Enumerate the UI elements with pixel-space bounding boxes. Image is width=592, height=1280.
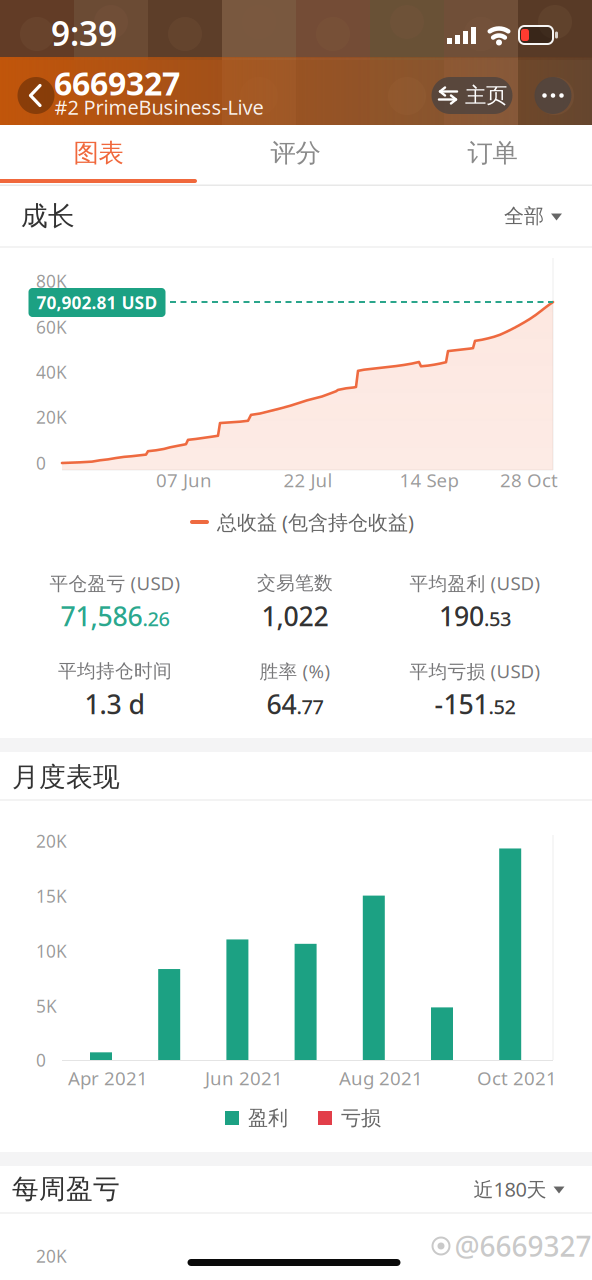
staticText: 1,022: [261, 598, 328, 634]
staticText: @6669327: [454, 1227, 591, 1265]
staticText: 15K: [36, 884, 67, 907]
staticText: 总收益 (包含持仓收益): [217, 509, 414, 535]
staticText: 0: [36, 1048, 46, 1071]
staticText: 22 Jul: [283, 468, 332, 492]
staticText: .53: [484, 605, 511, 632]
staticText: 成长: [21, 200, 75, 232]
button[interactable]: 图表: [0, 126, 197, 180]
button[interactable]: Back: [17, 77, 54, 114]
staticText: 14 Sep: [399, 468, 458, 492]
staticText: 6669327: [54, 62, 180, 104]
staticText: .52: [488, 693, 515, 720]
button[interactable]: More: [534, 77, 571, 114]
button[interactable]: 评分: [197, 126, 394, 180]
staticText: 订单: [467, 137, 517, 168]
staticText: 主页: [465, 82, 507, 109]
staticText: 190: [439, 598, 484, 634]
staticText: 70,902.81 USD: [36, 291, 157, 314]
staticText: 盈利: [248, 1106, 288, 1130]
button[interactable]: 订单: [394, 126, 591, 180]
staticText: Aug 2021: [339, 1066, 423, 1090]
button[interactable]: 全部: [504, 204, 562, 228]
staticText: 9:39: [51, 11, 117, 55]
staticText: 20K: [36, 405, 67, 428]
staticText: 平仓盈亏 (USD): [49, 571, 180, 595]
staticText: 近180天: [473, 1176, 546, 1202]
staticText: 亏损: [341, 1106, 381, 1130]
staticText: 图表: [73, 137, 123, 168]
staticText: 0: [36, 451, 46, 474]
staticText: 全部: [504, 204, 544, 228]
staticText: 平均亏损 (USD): [409, 659, 540, 683]
staticText: 每周盈亏: [12, 1173, 120, 1205]
staticText: 64: [266, 686, 296, 722]
staticText: -151: [434, 686, 488, 722]
staticText: 5K: [36, 994, 57, 1017]
staticText: 月度表现: [12, 761, 120, 793]
staticText: Jun 2021: [205, 1066, 283, 1090]
staticText: 平均盈利 (USD): [409, 571, 540, 595]
staticText: 交易笔数: [257, 571, 333, 594]
staticText: Apr 2021: [68, 1066, 148, 1090]
staticText: 1.3 d: [84, 686, 145, 722]
staticText: 28 Oct: [500, 468, 558, 492]
staticText: 胜率 (%): [259, 659, 330, 683]
button[interactable]: 近180天: [473, 1176, 564, 1202]
staticText: 07 Jun: [156, 468, 212, 492]
staticText: 平均持仓时间: [58, 659, 172, 682]
staticText: .26: [142, 605, 169, 632]
staticText: .77: [296, 693, 323, 720]
staticText: 80K: [36, 269, 67, 292]
staticText: 20K: [36, 1244, 67, 1267]
staticText: 评分: [270, 137, 320, 168]
staticText: #2 PrimeBusiness-Live: [54, 94, 263, 120]
staticText: 10K: [36, 939, 67, 962]
staticText: Oct 2021: [477, 1066, 557, 1090]
staticText: 40K: [36, 360, 67, 383]
button[interactable]: 主页: [431, 77, 512, 114]
staticText: 20K: [36, 829, 67, 852]
staticText: 60K: [36, 315, 67, 338]
staticText: 71,586: [60, 598, 142, 634]
